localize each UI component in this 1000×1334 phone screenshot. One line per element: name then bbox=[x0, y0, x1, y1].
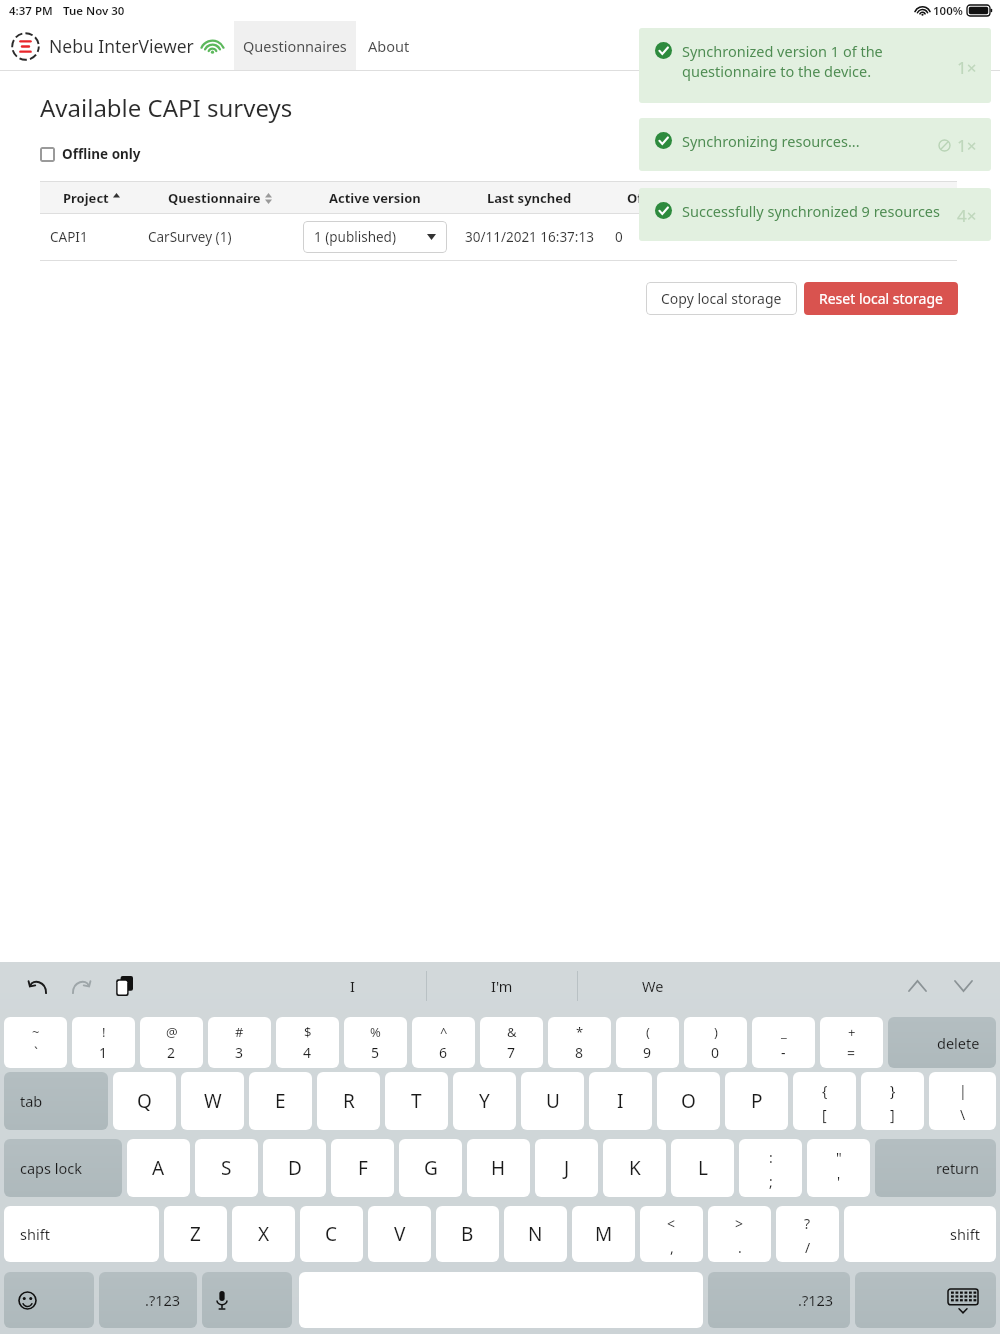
button[interactable]: .?123 bbox=[99, 1272, 197, 1328]
button[interactable]: @ bbox=[140, 1017, 203, 1068]
button[interactable]: : bbox=[739, 1139, 802, 1197]
button[interactable]: B bbox=[436, 1206, 499, 1262]
button[interactable]: P bbox=[725, 1072, 788, 1130]
button[interactable]: Paste bbox=[110, 971, 140, 1001]
button[interactable]: U bbox=[521, 1072, 584, 1130]
button[interactable]: H bbox=[467, 1139, 530, 1197]
staticText: 0 bbox=[711, 1043, 720, 1062]
button[interactable]: | bbox=[929, 1072, 996, 1130]
button[interactable]: R bbox=[317, 1072, 380, 1130]
button[interactable]: Reset local storage bbox=[804, 282, 958, 315]
button[interactable]: delete bbox=[888, 1017, 996, 1068]
button[interactable]: I bbox=[278, 962, 426, 1010]
button[interactable]: { bbox=[793, 1072, 856, 1130]
button[interactable]: M bbox=[572, 1206, 635, 1262]
button[interactable]: $ bbox=[276, 1017, 339, 1068]
button[interactable]: Questionnaire bbox=[142, 182, 297, 213]
button[interactable]: Active version bbox=[297, 182, 452, 213]
button[interactable]: G bbox=[399, 1139, 462, 1197]
button[interactable]: K bbox=[603, 1139, 666, 1197]
button[interactable]: Synchronized version 1 of the bbox=[639, 28, 991, 103]
button[interactable]: ! bbox=[72, 1017, 135, 1068]
button[interactable]: Questionnaires bbox=[234, 21, 356, 71]
staticText: 3 bbox=[235, 1043, 244, 1062]
button[interactable]: About bbox=[356, 21, 421, 71]
button[interactable]: I'm bbox=[427, 962, 577, 1010]
button[interactable]: Last synched bbox=[452, 182, 607, 213]
button[interactable]: Q bbox=[113, 1072, 176, 1130]
button[interactable]: C bbox=[300, 1206, 363, 1262]
button[interactable]: W bbox=[181, 1072, 244, 1130]
button[interactable]: Successfully synchronized 9 resources bbox=[639, 188, 991, 241]
button[interactable]: ) bbox=[684, 1017, 747, 1068]
button[interactable]: Redo bbox=[66, 971, 96, 1001]
button[interactable]: T bbox=[385, 1072, 448, 1130]
staticText: questionnaire to the device. bbox=[682, 61, 872, 81]
button[interactable]: tab bbox=[4, 1072, 108, 1130]
button[interactable]: ? bbox=[776, 1206, 839, 1262]
button[interactable]: 1 (published) bbox=[303, 221, 447, 253]
button[interactable]: Offline completes bbox=[607, 182, 762, 213]
button[interactable]: L bbox=[671, 1139, 734, 1197]
staticText: E bbox=[275, 1088, 286, 1114]
button[interactable]: shift bbox=[844, 1206, 996, 1262]
button[interactable]: Hide keyboard bbox=[855, 1272, 996, 1328]
button[interactable]: > bbox=[708, 1206, 771, 1262]
staticText: Synchronized version 1 of the bbox=[682, 41, 883, 61]
button[interactable]: * bbox=[548, 1017, 611, 1068]
button[interactable]: " bbox=[807, 1139, 870, 1197]
button[interactable]: Copy local storage bbox=[646, 282, 797, 315]
button[interactable]: Undo bbox=[22, 971, 52, 1001]
staticText: delete bbox=[937, 1033, 980, 1053]
button[interactable]: ( bbox=[616, 1017, 679, 1068]
button[interactable]: F bbox=[331, 1139, 394, 1197]
button[interactable]: Project bbox=[40, 182, 142, 213]
button[interactable]: ~ bbox=[4, 1017, 67, 1068]
button[interactable]: .?123 bbox=[708, 1272, 850, 1328]
button[interactable]: % bbox=[344, 1017, 407, 1068]
button[interactable]: Previous bbox=[900, 969, 934, 1003]
button[interactable]: # bbox=[208, 1017, 271, 1068]
button[interactable]: & bbox=[480, 1017, 543, 1068]
button[interactable]: D bbox=[263, 1139, 326, 1197]
button[interactable]: Y bbox=[453, 1072, 516, 1130]
button[interactable]: _ bbox=[752, 1017, 815, 1068]
button[interactable]: V bbox=[368, 1206, 431, 1262]
button[interactable]: Synchronizing resources... bbox=[639, 118, 991, 171]
button[interactable]: Emoji bbox=[4, 1272, 94, 1328]
button[interactable]: } bbox=[861, 1072, 924, 1130]
staticText: A bbox=[152, 1155, 165, 1181]
button[interactable]: return bbox=[875, 1139, 996, 1197]
button[interactable]: ^ bbox=[412, 1017, 475, 1068]
staticText: T bbox=[411, 1088, 422, 1114]
staticText: F bbox=[358, 1155, 368, 1181]
button[interactable]: + bbox=[820, 1017, 883, 1068]
button[interactable]: shift bbox=[4, 1206, 159, 1262]
button[interactable]: S bbox=[195, 1139, 258, 1197]
button[interactable]: I bbox=[589, 1072, 652, 1130]
button[interactable]: J bbox=[535, 1139, 598, 1197]
button[interactable]: N bbox=[504, 1206, 567, 1262]
staticText: Synchronizing resources... bbox=[682, 131, 860, 151]
button[interactable]: caps lock bbox=[4, 1139, 122, 1197]
button[interactable]: E bbox=[249, 1072, 312, 1130]
button[interactable]: A bbox=[127, 1139, 190, 1197]
staticText: S bbox=[221, 1155, 232, 1181]
button[interactable]: Z bbox=[164, 1206, 227, 1262]
button[interactable]: Offline only bbox=[40, 145, 141, 163]
button[interactable]: < bbox=[640, 1206, 703, 1262]
button[interactable]: Next bbox=[946, 969, 980, 1003]
staticText: 30/11/2021 16:37:13 bbox=[465, 228, 594, 246]
button[interactable]: Logout bbox=[919, 28, 1000, 64]
button[interactable]: X bbox=[232, 1206, 295, 1262]
staticText: Nebu InterViewer bbox=[49, 34, 194, 58]
button[interactable]: O bbox=[657, 1072, 720, 1130]
button[interactable]: Start online interview bbox=[762, 182, 957, 213]
staticText: 1× bbox=[957, 56, 977, 79]
button[interactable]: We bbox=[578, 962, 728, 1010]
staticText: } bbox=[890, 1081, 896, 1100]
button[interactable]: Dictate bbox=[202, 1272, 292, 1328]
staticText: _ bbox=[781, 1023, 787, 1041]
